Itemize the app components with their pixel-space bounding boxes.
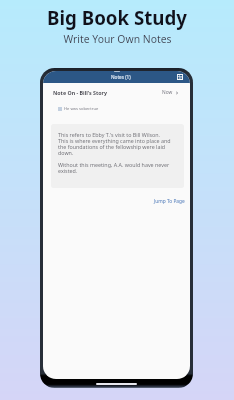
staticText: Write Your Own Notes [63, 32, 172, 46]
button[interactable]: Note On - Bill's Story [43, 87, 190, 98]
button[interactable]: Library [177, 74, 183, 80]
staticText: Note On - Bill's Story [53, 89, 108, 96]
staticText: This refers to Ebby T.'s visit to Bill W… [58, 131, 176, 175]
staticText: Big Book Study [47, 5, 187, 30]
button[interactable]: Jump To Page [154, 198, 185, 205]
staticText: He was sober.true [64, 106, 99, 112]
staticText: Notes (1) [111, 74, 131, 80]
button[interactable]: He was sober.true [58, 105, 190, 113]
staticText: Now [162, 89, 173, 96]
button[interactable]: This refers to Ebby T.'s visit to Bill W… [51, 124, 184, 188]
